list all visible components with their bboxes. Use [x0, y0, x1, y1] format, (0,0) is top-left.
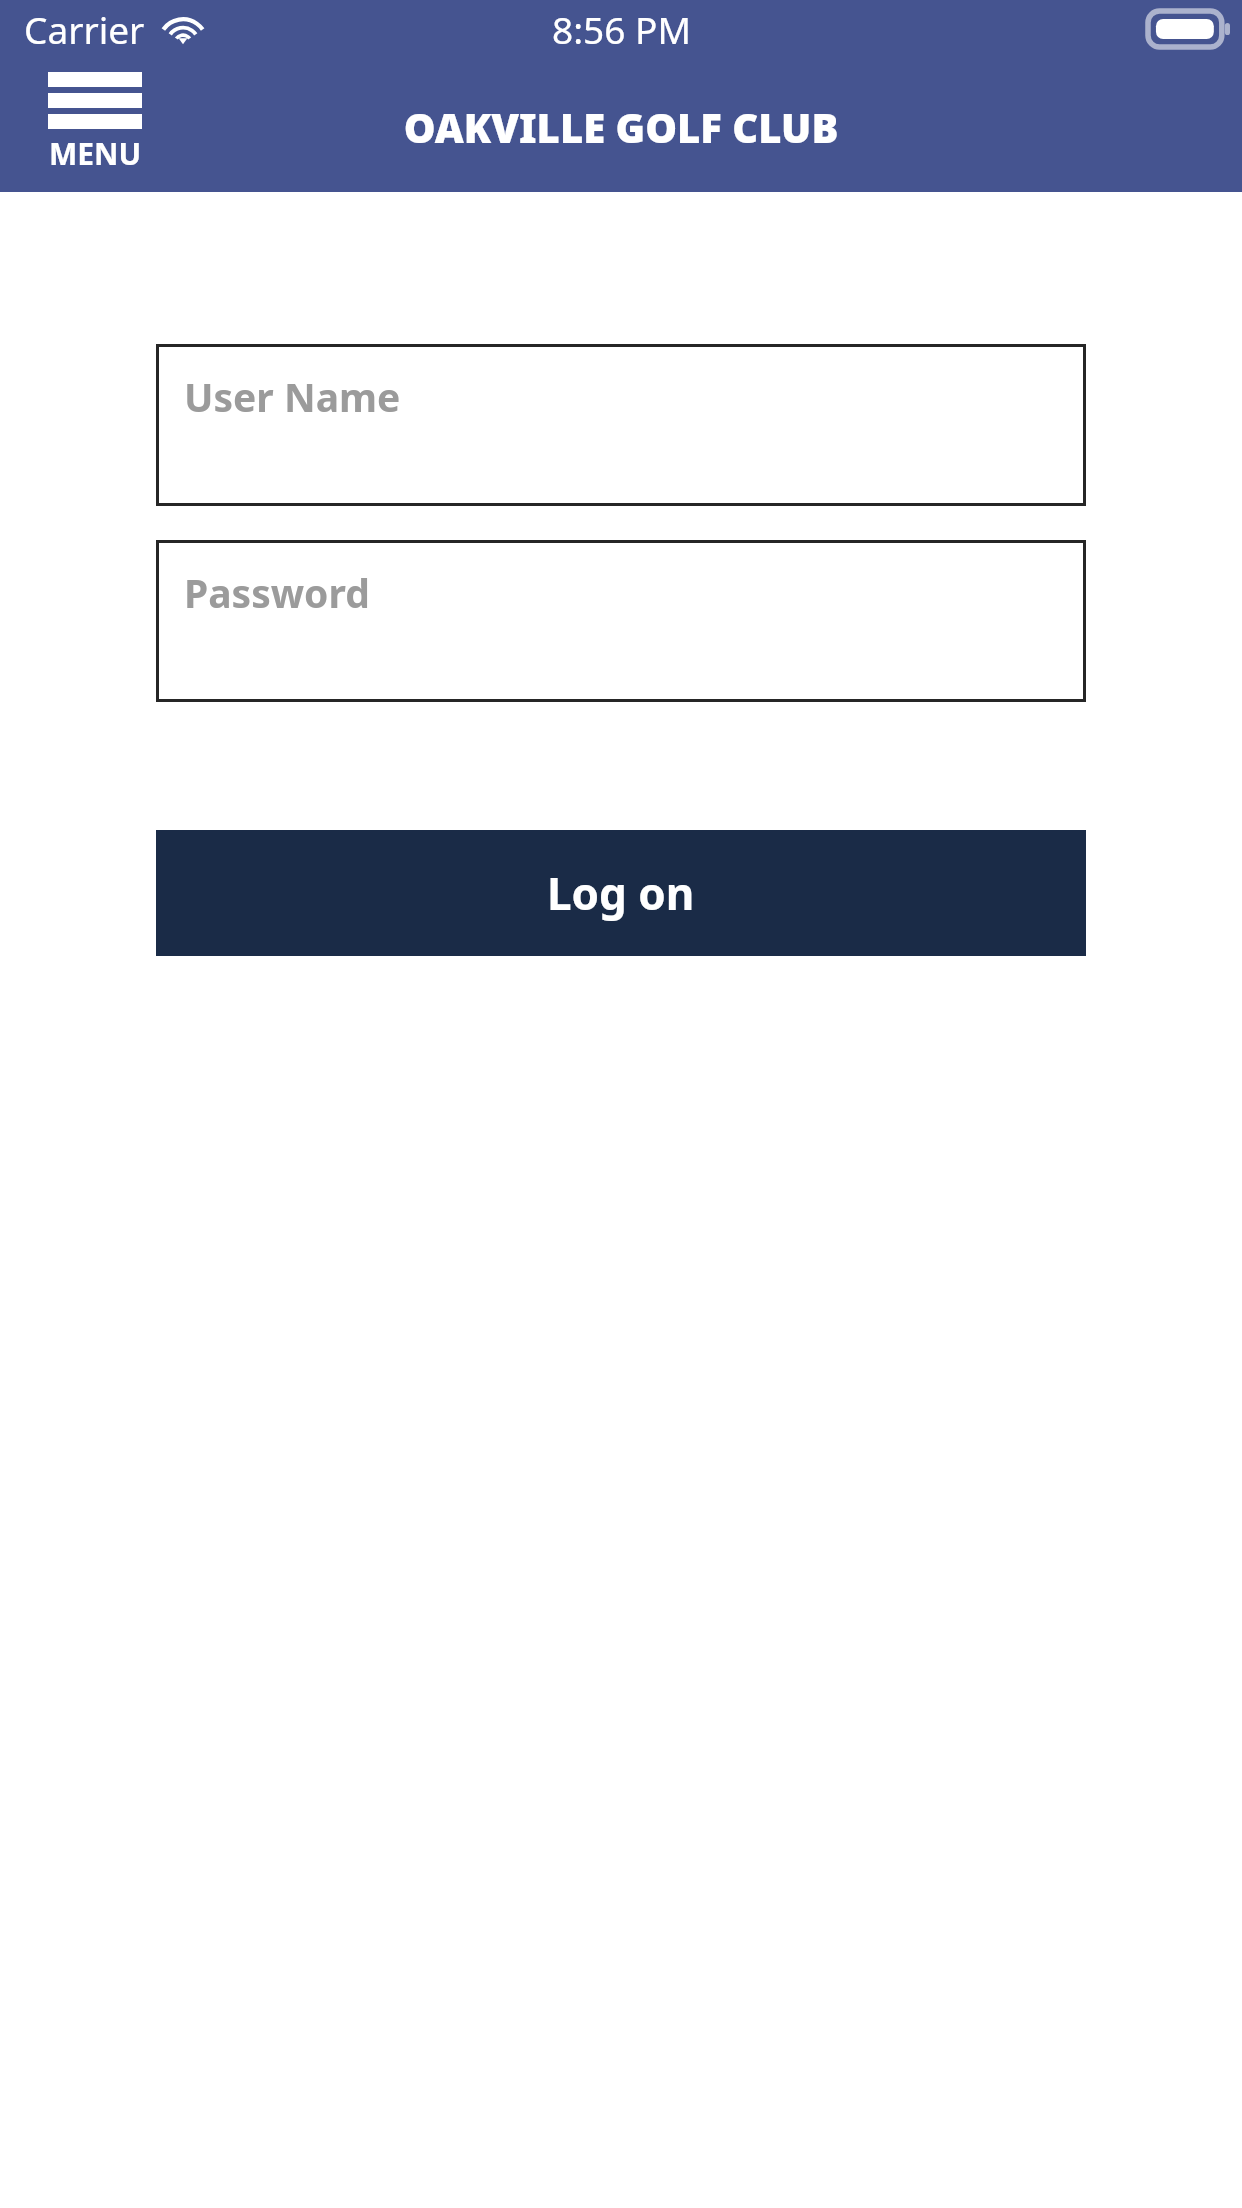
button[interactable]: Log on: [156, 830, 1086, 956]
staticText: OAKVILLE GOLF CLUB: [0, 100, 1242, 154]
button[interactable]: Password: [156, 540, 1086, 702]
staticText: 8:56 PM: [552, 4, 691, 54]
staticText: User Name: [184, 370, 401, 423]
staticText: MENU: [49, 133, 142, 174]
button[interactable]: Menu: [40, 68, 150, 178]
button[interactable]: User Name: [156, 344, 1086, 506]
staticText: Carrier: [24, 4, 145, 54]
staticText: Log on: [547, 863, 695, 923]
staticText: Password: [184, 566, 370, 619]
